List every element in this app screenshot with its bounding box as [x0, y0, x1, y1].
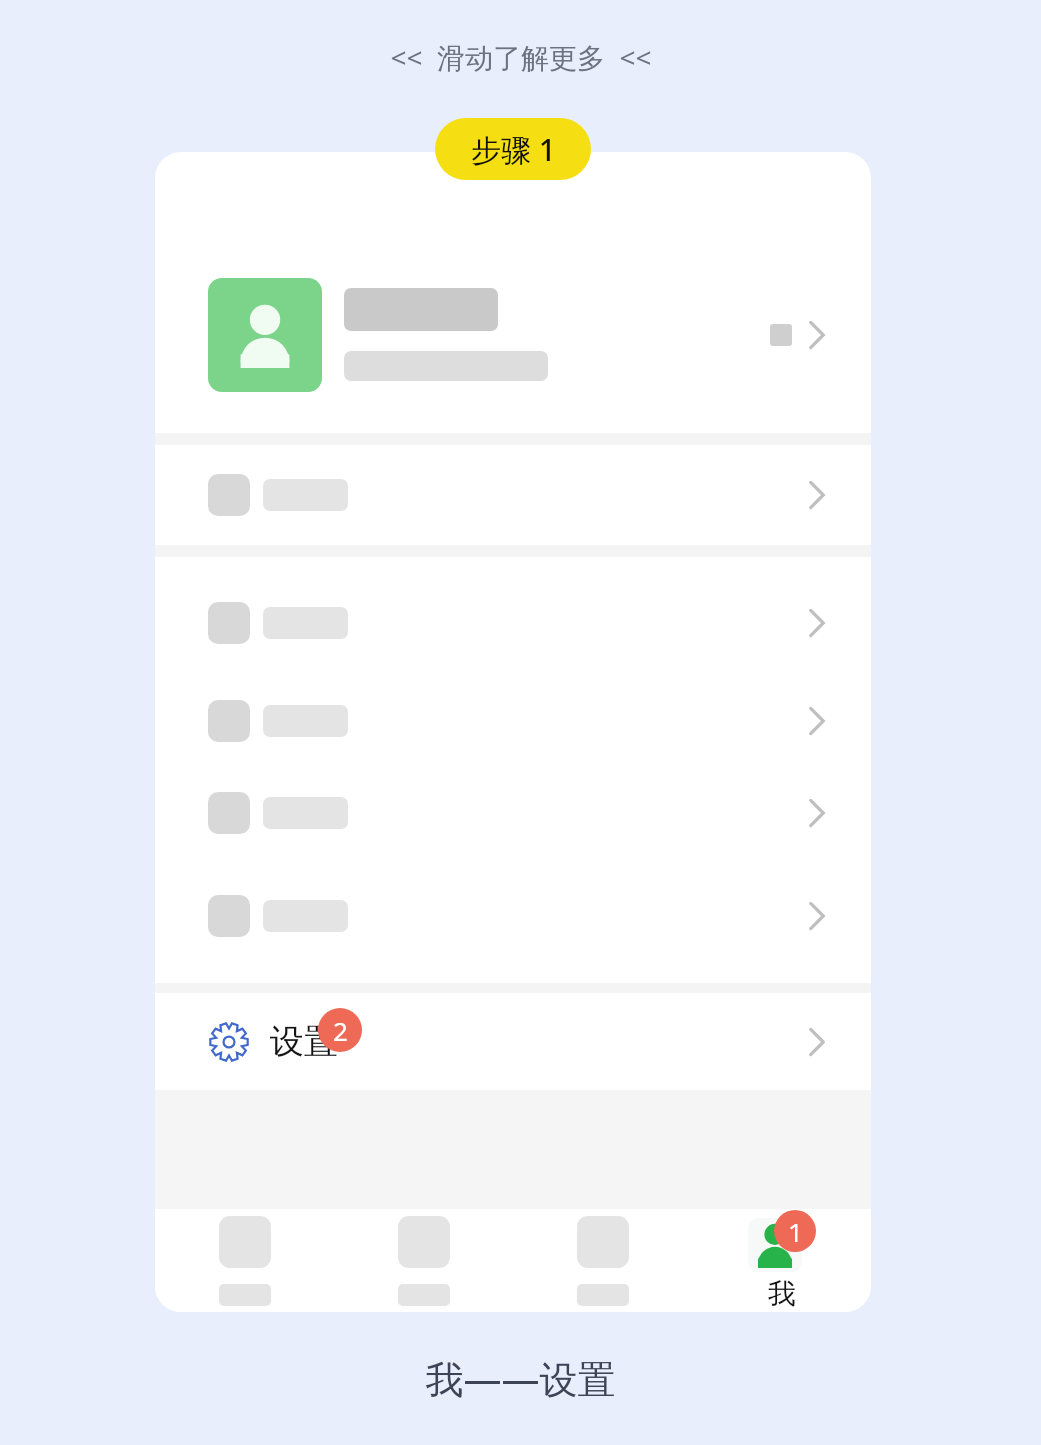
staticText: 我 — [768, 1276, 796, 1311]
button[interactable]: List item — [155, 885, 871, 947]
button[interactable]: List item — [155, 445, 871, 545]
button[interactable]: 1 — [692, 1209, 871, 1312]
staticText: 1 — [788, 1214, 803, 1249]
staticText: 设置 — [270, 1020, 338, 1063]
button[interactable]: List item — [155, 592, 871, 654]
staticText: 步骤 1 — [471, 129, 556, 170]
button[interactable]: List item — [155, 782, 871, 844]
button[interactable] — [155, 236, 871, 433]
staticText: 我——设置 — [425, 1352, 616, 1404]
button[interactable]: 步骤 1 — [435, 118, 591, 180]
staticText: << 滑动了解更多 << — [390, 38, 652, 76]
button[interactable]: Navigation item — [155, 1209, 334, 1312]
staticText: 2 — [333, 1013, 348, 1048]
button[interactable]: 设置 — [155, 993, 871, 1090]
button[interactable]: List item — [155, 690, 871, 752]
button[interactable]: Navigation item — [513, 1209, 692, 1312]
button[interactable]: Navigation item — [334, 1209, 513, 1312]
